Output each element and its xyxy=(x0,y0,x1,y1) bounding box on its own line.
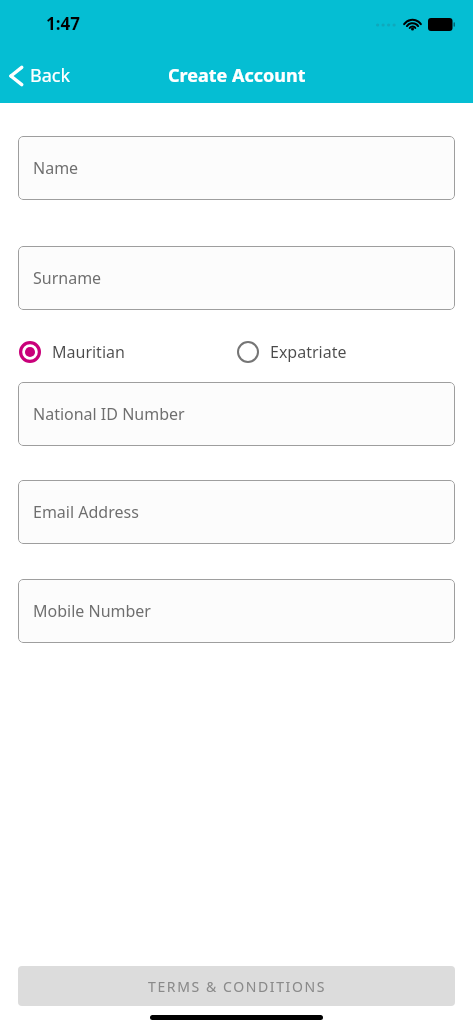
staticText: Surname xyxy=(33,267,102,289)
staticText: 1:47 xyxy=(46,12,80,35)
button[interactable]: Email Address xyxy=(18,480,455,544)
staticText: National ID Number xyxy=(33,403,185,425)
staticText: Expatriate xyxy=(270,341,347,363)
staticText: Mobile Number xyxy=(33,600,151,622)
button[interactable]: Name xyxy=(18,136,455,200)
button[interactable]: Mauritian xyxy=(18,336,236,368)
button[interactable]: Mobile Number xyxy=(18,579,455,643)
button[interactable]: National ID Number xyxy=(18,382,455,446)
staticText: TERMS & CONDITIONS xyxy=(148,977,326,996)
button[interactable]: Surname xyxy=(18,246,455,310)
staticText: Back xyxy=(30,63,71,88)
staticText: Create Account xyxy=(168,63,306,88)
button[interactable]: Expatriate xyxy=(236,336,455,368)
button[interactable]: TERMS & CONDITIONS xyxy=(18,966,455,1006)
staticText: Name xyxy=(33,157,79,179)
staticText: Mauritian xyxy=(52,341,125,363)
button[interactable]: Back xyxy=(0,57,83,94)
staticText: Email Address xyxy=(33,501,139,523)
